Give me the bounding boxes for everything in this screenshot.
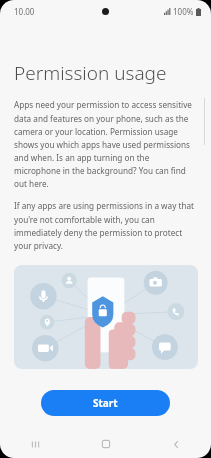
staticText: Start	[93, 396, 118, 410]
staticText: 100%	[173, 6, 194, 17]
staticText: Apps need your permission to access sens…	[14, 99, 197, 189]
staticText: If any apps are using permissions in a w…	[14, 200, 197, 251]
button[interactable]: Start	[41, 390, 170, 416]
button[interactable]: Home	[71, 430, 141, 458]
button[interactable]: Back	[141, 430, 211, 458]
staticText: 10.00	[14, 6, 35, 17]
staticText: Permission usage	[14, 60, 167, 86]
button[interactable]: Recents	[0, 430, 71, 458]
